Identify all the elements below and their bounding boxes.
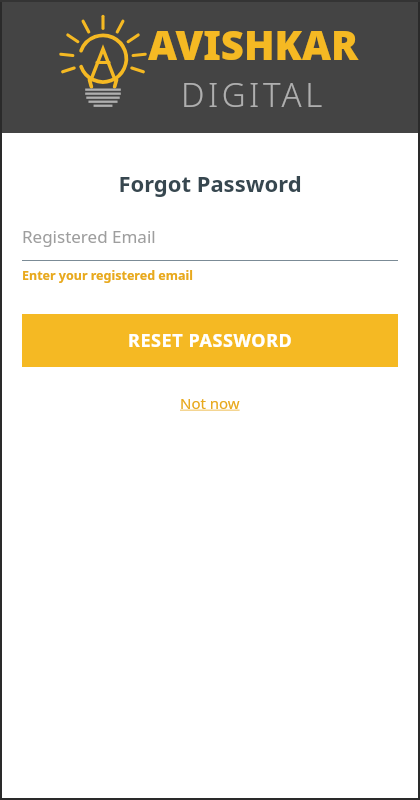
staticText: Not now (180, 393, 240, 413)
button[interactable]: Not now (172, 390, 248, 416)
staticText: Enter your registered email (22, 267, 193, 284)
staticText: RESET PASSWORD (128, 328, 293, 353)
button[interactable]: RESET PASSWORD (22, 314, 398, 367)
button[interactable]: Registered Email (22, 225, 398, 261)
staticText: DIGITAL (181, 72, 326, 117)
staticText: Registered Email (22, 225, 156, 248)
staticText: Forgot Password (0, 168, 420, 198)
staticText: AVISHKAR (148, 17, 359, 71)
